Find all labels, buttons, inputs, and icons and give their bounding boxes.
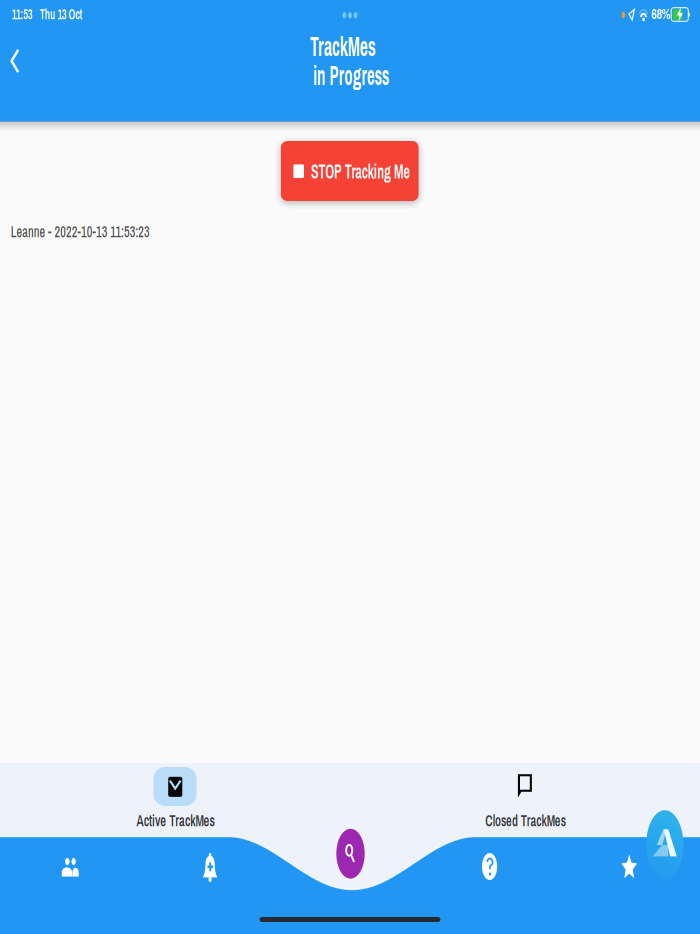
staticText: Thu 13 Oct bbox=[32, 4, 90, 24]
staticText: STOP Tracking Me bbox=[287, 157, 433, 185]
staticText: 68% bbox=[650, 4, 672, 23]
button[interactable]: Search bbox=[334, 827, 366, 881]
staticText: 11:53 bbox=[8, 4, 36, 24]
button[interactable]: STOP Tracking Me bbox=[281, 141, 419, 201]
staticText: Closed TrackMes bbox=[471, 809, 580, 831]
button[interactable]: Add alert bbox=[188, 845, 232, 889]
staticText: TrackMes bbox=[293, 28, 392, 64]
button[interactable]: Contacts bbox=[48, 845, 92, 889]
staticText: Leanne - 2022-10-13 11:53:23 bbox=[0, 219, 177, 242]
staticText: in Progress bbox=[290, 57, 413, 93]
button[interactable]: App logo bbox=[645, 809, 685, 881]
button[interactable]: Back bbox=[0, 39, 38, 83]
button[interactable]: Active TrackMes bbox=[0, 763, 350, 837]
button[interactable]: Favourites bbox=[609, 847, 649, 887]
button[interactable]: Closed TrackMes bbox=[350, 763, 700, 837]
button[interactable]: Help bbox=[470, 846, 510, 886]
staticText: Active TrackMes bbox=[123, 809, 228, 831]
